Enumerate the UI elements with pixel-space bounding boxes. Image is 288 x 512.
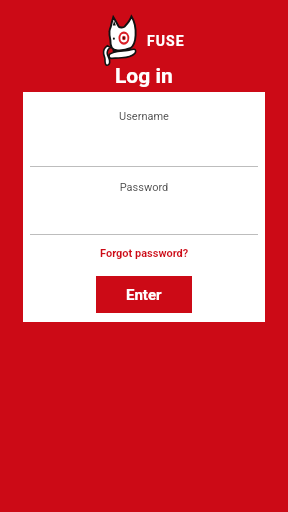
button[interactable]: Enter [96,276,192,313]
staticText: Log in [115,64,173,89]
staticText: Enter [126,286,162,304]
staticText: Forgot password? [100,247,189,260]
staticText: Username [23,110,265,123]
button[interactable]: Forgot password? [23,243,265,263]
other: Bullseye logo [101,13,141,67]
staticText: Password [23,181,265,194]
staticText: FUSE [147,33,185,49]
